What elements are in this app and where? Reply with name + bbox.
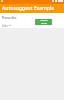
staticText: Results — [2, 15, 17, 21]
staticText: Autosuggest Example — [2, 5, 55, 12]
staticText: Italy — [2, 24, 8, 27]
button[interactable]: Italy — [2, 24, 11, 27]
button[interactable]: SEARCH — [35, 19, 52, 22]
button[interactable]: CLEAR — [35, 22, 52, 25]
staticText: CLEAR — [41, 22, 47, 25]
staticText: SEARCH — [40, 19, 48, 22]
